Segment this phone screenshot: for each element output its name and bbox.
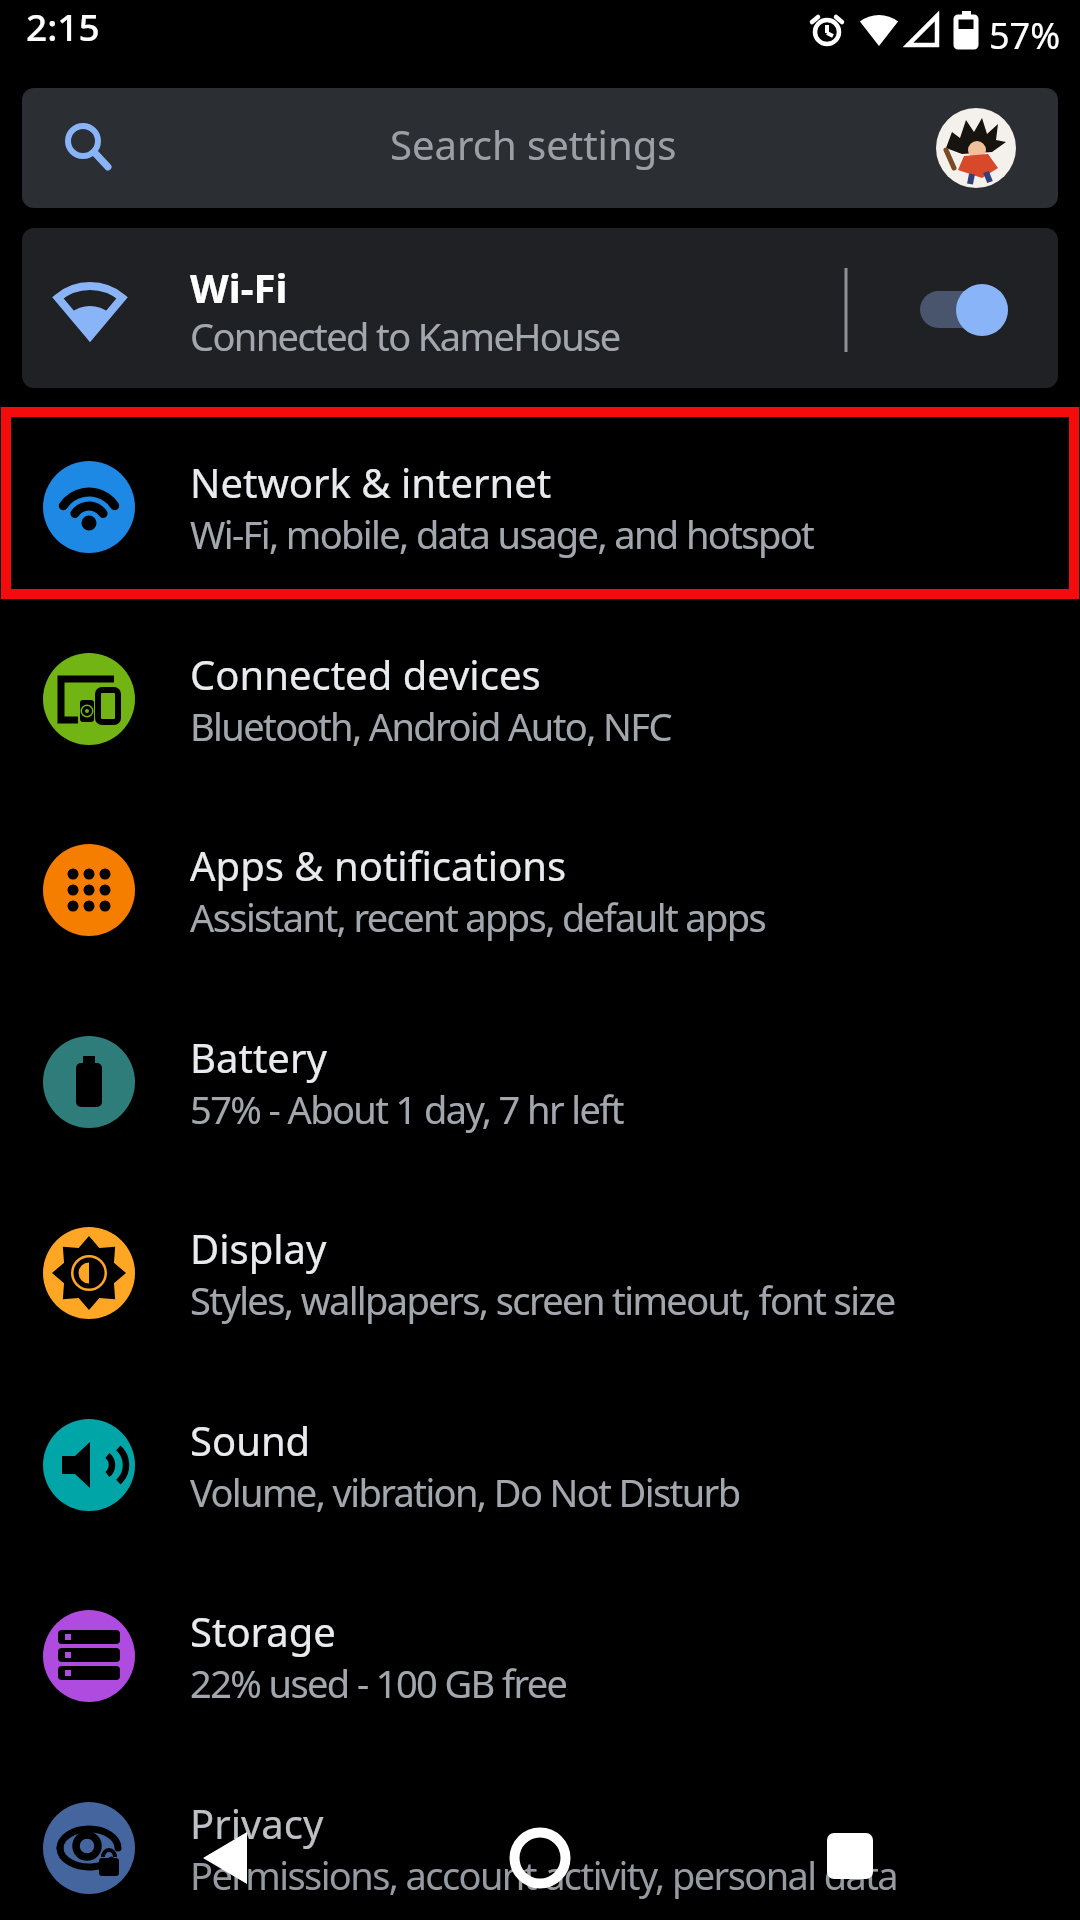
staticText: 22% used - 100 GB free	[190, 1657, 567, 1709]
button[interactable]: Display	[0, 1177, 1080, 1369]
button[interactable]: Sound	[0, 1369, 1080, 1561]
staticText: Connected devices	[190, 647, 541, 701]
staticText: Assistant, recent apps, default apps	[190, 891, 766, 943]
button[interactable]	[480, 1798, 600, 1918]
staticText: Storage	[190, 1604, 336, 1658]
staticText: Volume, vibration, Do Not Disturb	[190, 1466, 740, 1518]
staticText: Network & internet	[190, 455, 552, 509]
staticText: 57%	[989, 11, 1061, 60]
button[interactable]: Network & internet	[0, 411, 1080, 603]
staticText: Apps & notifications	[190, 838, 567, 892]
staticText: Wi-Fi	[190, 260, 288, 314]
button[interactable]: Connected devices	[0, 603, 1080, 795]
button[interactable]: Privacy	[0, 1752, 1080, 1920]
staticText: 57% - About 1 day, 7 hr left	[190, 1083, 623, 1135]
staticText: Connected to KameHouse	[190, 310, 620, 362]
staticText: Permissions, account activity, personal …	[190, 1849, 898, 1901]
button[interactable]: Search settings	[22, 88, 1058, 208]
staticText: Sound	[190, 1413, 311, 1467]
staticText: Wi-Fi, mobile, data usage, and hotspot	[190, 508, 814, 560]
button[interactable]: Battery	[0, 986, 1080, 1178]
button[interactable]: Storage	[0, 1560, 1080, 1752]
staticText: Display	[190, 1221, 327, 1275]
button[interactable]: Wi-Fi	[22, 228, 1058, 388]
staticText: Styles, wallpapers, screen timeout, font…	[190, 1274, 895, 1326]
button[interactable]	[790, 1796, 910, 1916]
button[interactable]	[892, 258, 1032, 358]
staticText: Bluetooth, Android Auto, NFC	[190, 700, 671, 752]
staticText: Battery	[190, 1030, 327, 1084]
staticText: 2:15	[26, 1, 100, 51]
staticText: Privacy	[190, 1796, 324, 1850]
button[interactable]	[166, 1798, 286, 1918]
button[interactable]	[936, 108, 1016, 188]
button[interactable]: Apps & notifications	[0, 794, 1080, 986]
staticText: Search settings	[390, 117, 677, 171]
